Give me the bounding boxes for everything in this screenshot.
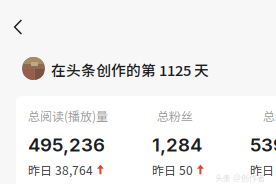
staticText: 昨日 2 bbox=[250, 161, 276, 178]
staticText: 昨日 50 bbox=[152, 161, 193, 178]
staticText: 539 bbox=[250, 133, 276, 156]
staticText: 495,236 bbox=[28, 133, 105, 156]
staticText: 1,284 bbox=[152, 133, 202, 156]
staticText: 总阅读(播放)量 bbox=[28, 107, 108, 124]
staticText: 昨日 38,764 bbox=[28, 161, 93, 178]
staticText: 总评论 bbox=[263, 107, 276, 124]
staticText: 头条 @创作者 bbox=[215, 172, 265, 184]
staticText: 在头条创作的第 1125 天 bbox=[51, 59, 209, 80]
button[interactable]: Back bbox=[4, 13, 32, 41]
staticText: 总粉丝 bbox=[157, 107, 193, 124]
